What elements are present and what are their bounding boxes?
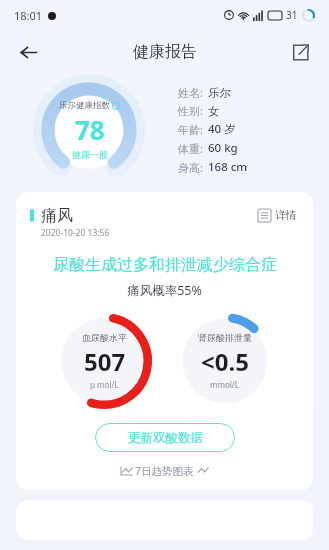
staticText: 7日趋势图表 xyxy=(135,464,194,478)
staticText: 31 xyxy=(286,8,298,22)
staticText: 40 岁 xyxy=(208,121,236,137)
staticText: 肾尿酸排泄量 xyxy=(198,332,252,343)
staticText: 18:01 xyxy=(14,8,43,23)
staticText: 2020-10-20 13:56 xyxy=(41,227,110,239)
staticText: 168 cm xyxy=(208,159,248,175)
staticText: 身高: xyxy=(178,160,203,175)
staticText: 健康报告 xyxy=(133,42,197,62)
staticText: 健康一般 xyxy=(72,149,108,160)
button[interactable]: Back xyxy=(10,34,46,70)
staticText: 血尿酸水平 xyxy=(82,332,127,343)
staticText: 女 xyxy=(208,104,220,118)
staticText: 痛风 xyxy=(41,206,73,226)
staticText: 性别: xyxy=(178,103,203,118)
staticText: 60 kg xyxy=(208,140,238,156)
staticText: 体重: xyxy=(178,141,203,156)
staticText: 更新双酸数据 xyxy=(128,430,203,446)
staticText: 507 xyxy=(84,345,126,378)
staticText: 姓名: xyxy=(178,85,203,100)
staticText: 尿酸生成过多和排泄减少综合症 xyxy=(53,255,277,275)
staticText: 年龄: xyxy=(178,122,203,137)
staticText: <0.5 xyxy=(201,345,249,378)
staticText: 乐尔健康指数 xyxy=(59,100,110,111)
button[interactable]: 更新双酸数据 xyxy=(95,423,235,452)
staticText: 乐尔 xyxy=(208,86,231,100)
staticText: mmol/L xyxy=(210,379,240,390)
staticText: μ mol/L xyxy=(90,379,119,390)
staticText: 痛风概率55% xyxy=(127,282,202,299)
button[interactable]: 详情 xyxy=(256,206,299,224)
staticText: 详情 xyxy=(275,208,297,222)
button[interactable]: Share xyxy=(283,35,317,69)
button[interactable]: 7日趋势图表 xyxy=(30,464,299,478)
staticText: 78 xyxy=(75,112,105,147)
